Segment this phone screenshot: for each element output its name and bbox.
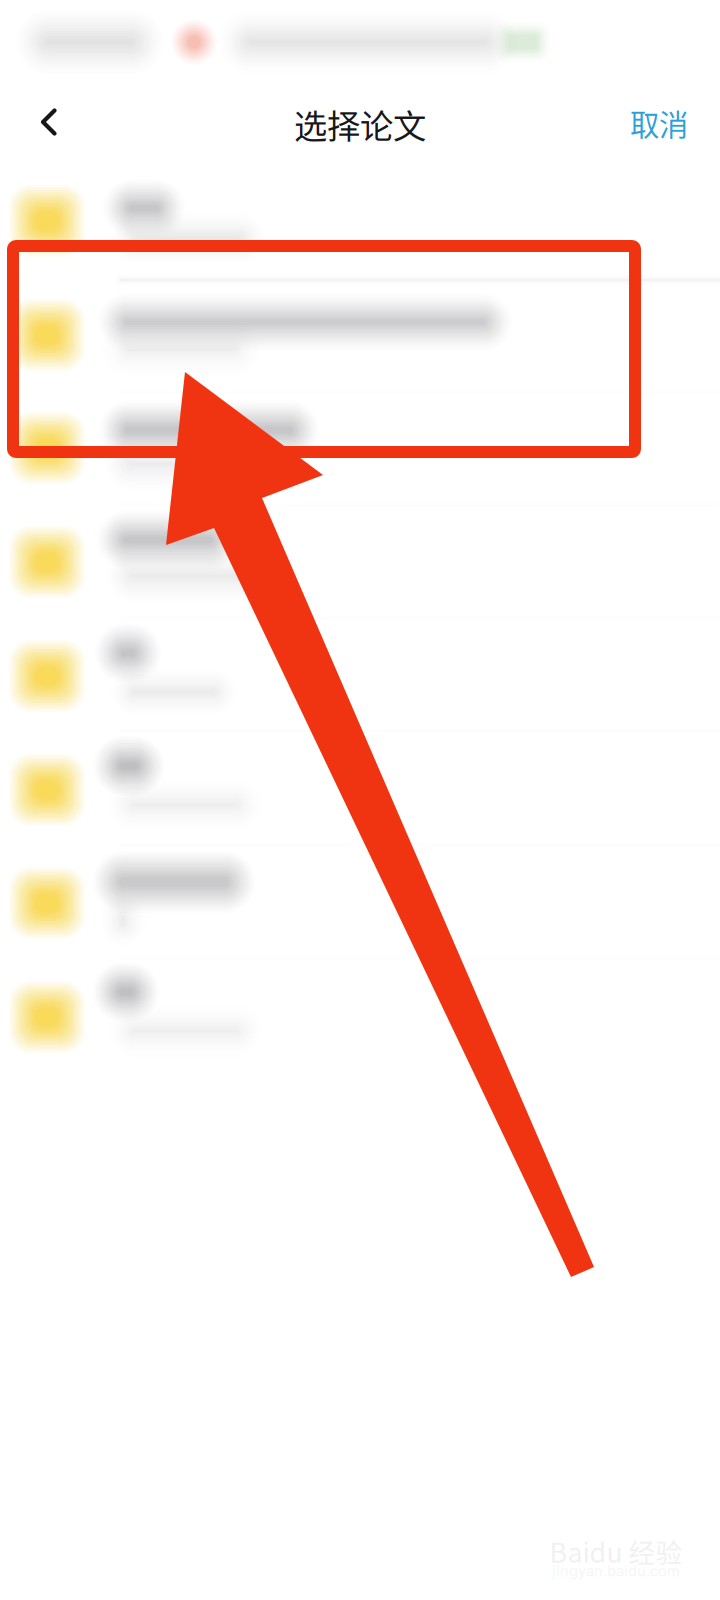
button[interactable]	[0, 0, 720, 1600]
button[interactable]: 取消	[604, 81, 714, 165]
staticText: 取消	[630, 102, 688, 144]
staticText: 选择论文	[294, 100, 426, 148]
button[interactable]	[0, 0, 720, 1600]
button[interactable]	[0, 0, 720, 1600]
button[interactable]	[0, 0, 720, 1600]
button[interactable]	[0, 0, 720, 1600]
button[interactable]	[0, 0, 720, 1600]
button[interactable]	[0, 0, 720, 1600]
button[interactable]: Back	[2, 80, 98, 164]
button[interactable]	[0, 0, 720, 1600]
staticText: Baidu 经验	[549, 1532, 682, 1570]
staticText: jingyan.baidu.com	[552, 1562, 680, 1580]
